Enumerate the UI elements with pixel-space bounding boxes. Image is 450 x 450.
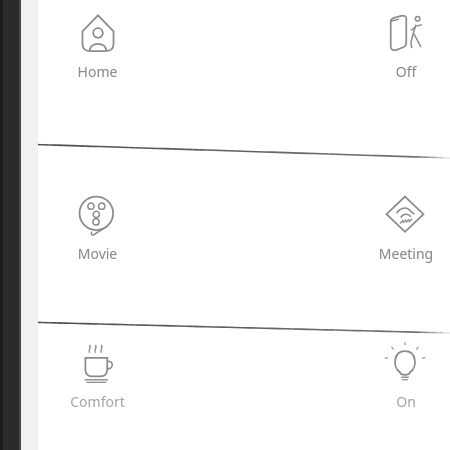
staticText: Off (362, 62, 450, 81)
other: On (384, 342, 426, 384)
other: Off (384, 12, 426, 54)
staticText: Home (55, 62, 140, 81)
staticText: Comfort (55, 392, 140, 411)
staticText: Movie (55, 244, 140, 263)
other: Movie (77, 194, 119, 236)
staticText: Meeting (362, 244, 450, 263)
other: Meeting (384, 194, 426, 236)
staticText: On (362, 392, 450, 411)
button[interactable]: Comfort (55, 330, 140, 450)
button[interactable]: Movie (55, 152, 140, 327)
other: Comfort (77, 342, 119, 384)
button[interactable]: On (362, 330, 450, 450)
button[interactable]: Off (362, 0, 450, 148)
button[interactable]: Home (55, 0, 140, 148)
button[interactable]: Meeting (362, 152, 450, 327)
other: Home (77, 12, 119, 54)
